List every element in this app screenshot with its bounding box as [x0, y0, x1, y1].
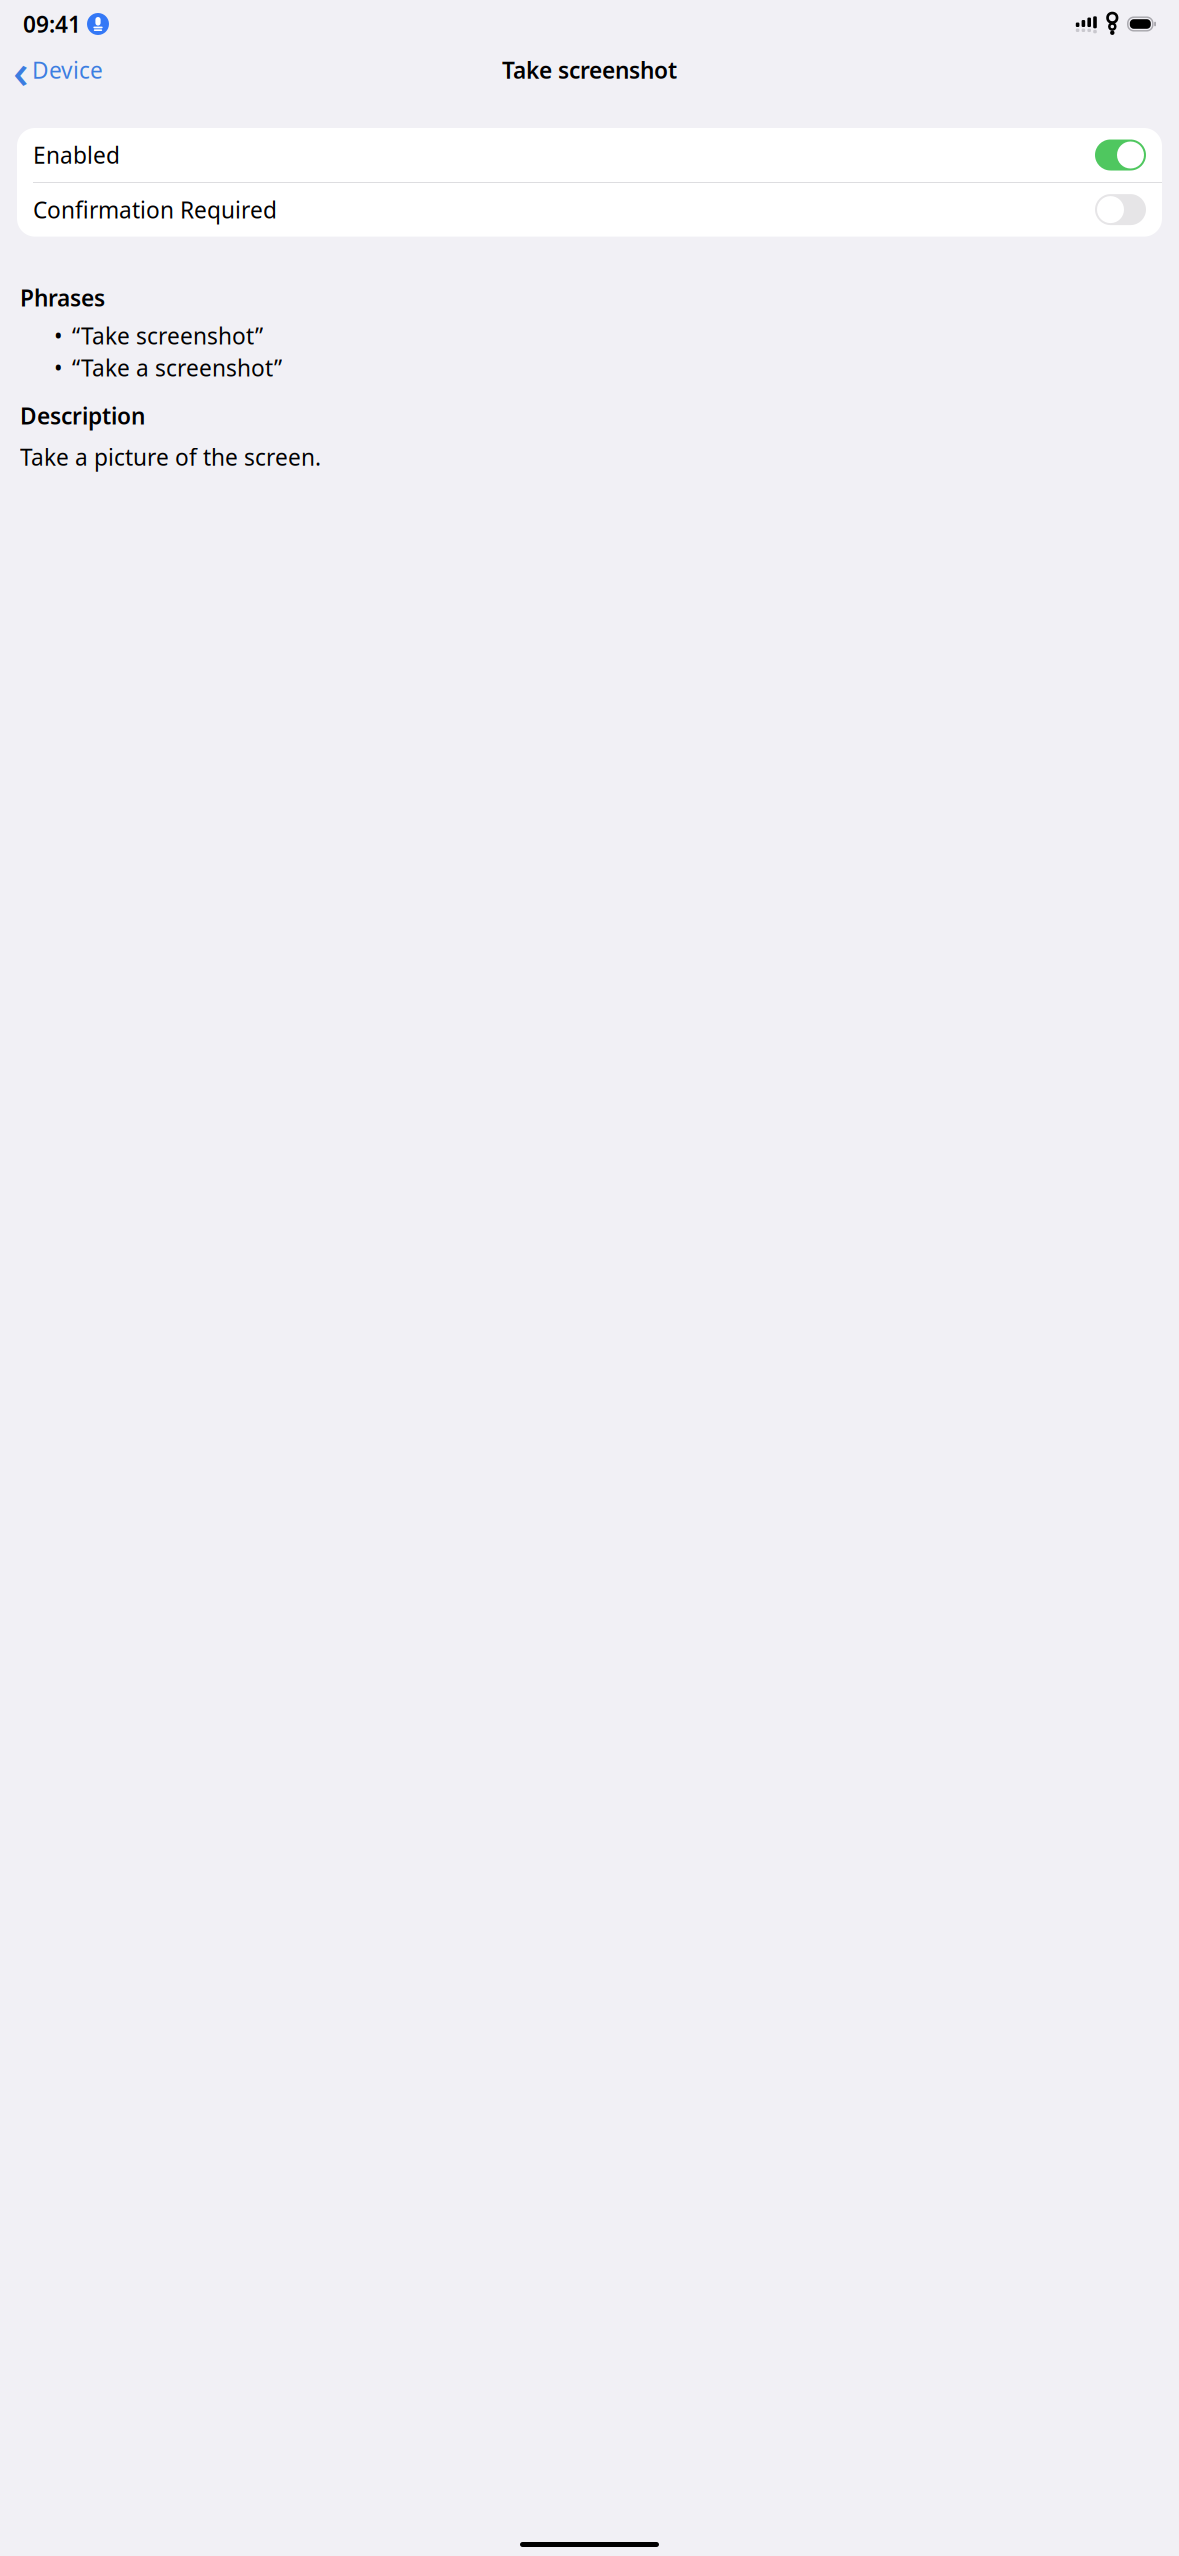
staticText: • [54, 321, 63, 351]
staticText: ‹ [13, 38, 29, 102]
button[interactable]: ‹ [6, 49, 111, 91]
staticText: Enabled [33, 140, 120, 170]
staticText: Device [32, 55, 103, 85]
staticText: “Take screenshot” [72, 321, 263, 351]
staticText: Description [20, 401, 145, 431]
staticText: Phrases [20, 283, 105, 313]
staticText: “Take a screenshot” [72, 353, 282, 383]
button[interactable]: Confirmation Required [17, 183, 1162, 237]
staticText: Take screenshot [502, 55, 677, 85]
button[interactable]: Enabled [17, 128, 1162, 182]
staticText: Take a picture of the screen. [20, 442, 321, 472]
staticText: 09:41 [23, 9, 81, 39]
staticText: • [54, 353, 63, 383]
staticText: Confirmation Required [33, 194, 277, 225]
